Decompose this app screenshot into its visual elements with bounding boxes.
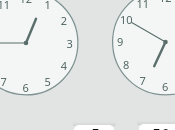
button[interactable] [139,124,175,130]
staticText: 50 [152,124,171,130]
button[interactable]: Alarm clock 6:50 [112,0,175,96]
button[interactable]: Alarm clock 12:45 [0,0,78,95]
staticText: 5 [91,124,101,130]
button[interactable] [74,125,114,130]
